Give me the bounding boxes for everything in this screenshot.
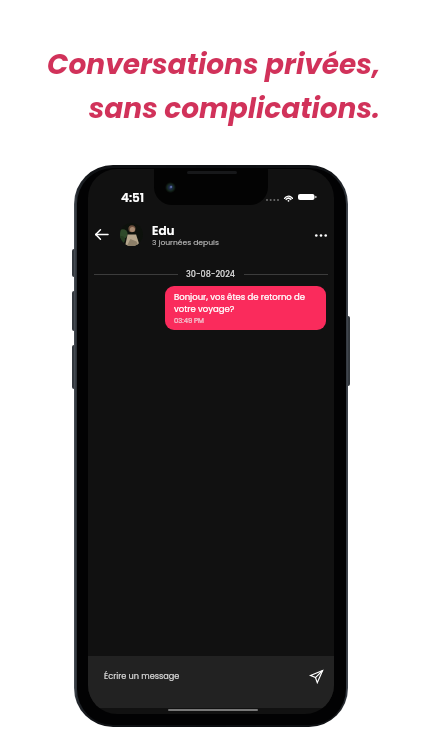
button[interactable]: Écrire un message — [88, 656, 334, 708]
staticText: 4:51 — [121, 189, 145, 206]
button[interactable]: Profile photo — [120, 223, 143, 246]
staticText: Conversations privées, sans complication… — [24, 45, 380, 127]
staticText: 30-08-2024 — [186, 269, 236, 280]
button[interactable]: Back — [88, 221, 114, 247]
staticText: Bonjour, vos êtes de retorno de votre vo… — [174, 291, 318, 315]
button[interactable]: Bonjour, vos êtes de retorno de votre vo… — [165, 286, 326, 330]
staticText: 3 journées depuis — [152, 237, 219, 248]
staticText: Edu — [152, 222, 175, 239]
button[interactable]: Send — [306, 666, 326, 686]
button[interactable]: More options — [307, 221, 334, 249]
staticText: Écrire un message — [104, 670, 180, 681]
staticText: 03:49 PM — [174, 316, 204, 326]
